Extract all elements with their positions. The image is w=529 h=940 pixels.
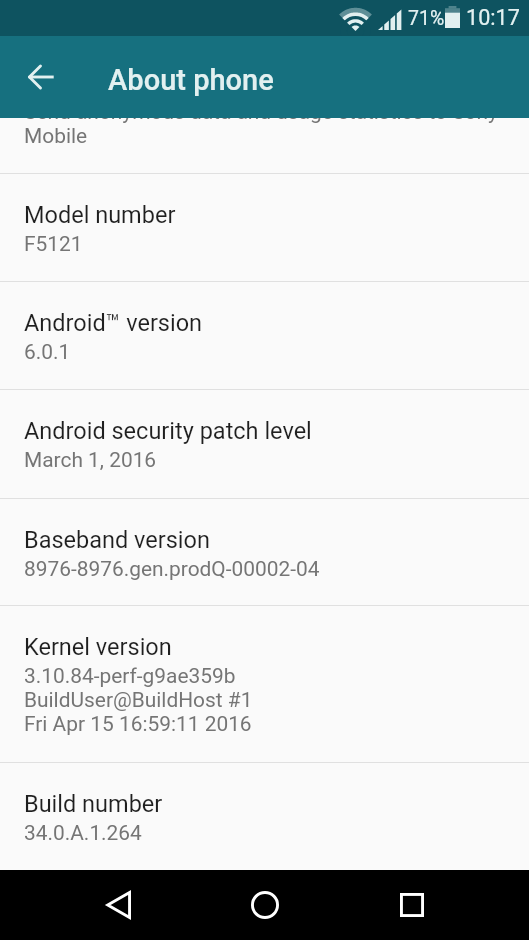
staticText: Model number — [24, 201, 176, 229]
button[interactable]: Recent apps — [368, 870, 456, 940]
staticText: F5121 — [24, 232, 83, 256]
button[interactable]: Build number — [0, 763, 529, 870]
button[interactable]: Navigate up — [7, 36, 75, 118]
button[interactable]: Kernel version — [0, 606, 529, 762]
staticText: Mobile — [24, 124, 88, 148]
staticText: 10:17 — [466, 5, 520, 30]
staticText: 6.0.1 — [24, 340, 71, 364]
button[interactable]: Baseband version — [0, 499, 529, 605]
staticText: 71% — [408, 7, 445, 30]
staticText: Baseband version — [24, 526, 210, 554]
button[interactable]: Send anonymous data and usage statistics… — [0, 118, 529, 173]
button[interactable]: Home — [221, 870, 309, 940]
staticText: 34.0.A.1.264 — [24, 821, 142, 845]
button[interactable]: Android™ version — [0, 282, 529, 389]
button[interactable]: Android security patch level — [0, 390, 529, 498]
staticText: Send anonymous data and usage statistics… — [24, 100, 498, 124]
staticText: Android security patch level — [24, 417, 312, 445]
staticText: Kernel version — [24, 633, 172, 661]
button[interactable]: Model number — [0, 174, 529, 281]
staticText: Build number — [24, 790, 163, 818]
staticText: BuildUser@BuildHost #1 — [24, 688, 253, 712]
staticText: March 1, 2016 — [24, 448, 157, 472]
button[interactable]: Back — [74, 870, 162, 940]
staticText: 3.10.84-perf-g9ae359b — [24, 664, 236, 688]
staticText: Android™ version — [24, 309, 203, 337]
staticText: 8976-8976.gen.prodQ-00002-04 — [24, 557, 320, 581]
staticText: Fri Apr 15 16:59:11 2016 — [24, 712, 252, 736]
staticText: About phone — [108, 63, 274, 97]
